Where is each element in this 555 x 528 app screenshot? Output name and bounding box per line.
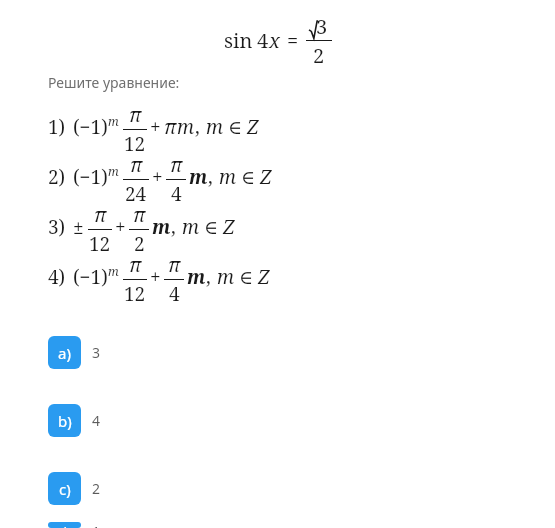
staticText: , (195, 114, 200, 140)
staticText: Z (247, 114, 259, 140)
staticText: + (150, 114, 161, 140)
staticText: , (171, 214, 176, 240)
staticText: 2 (92, 479, 101, 498)
staticText: b) (58, 411, 72, 431)
staticText: d) (58, 522, 72, 528)
staticText: π (168, 252, 181, 278)
staticText: 12 (124, 131, 146, 152)
staticText: , (208, 164, 213, 190)
staticText: 3 (316, 13, 328, 40)
staticText: Решите уравнение: (48, 73, 180, 92)
staticText: + (115, 214, 126, 240)
staticText: 1 (92, 522, 101, 528)
staticText: , (206, 264, 211, 290)
staticText: 3) (48, 214, 66, 240)
button[interactable]: Answer d: 1 (48, 522, 555, 528)
staticText: m (189, 164, 208, 190)
staticText: c) (59, 479, 71, 499)
staticText: m (219, 164, 237, 190)
staticText: m (108, 263, 119, 279)
staticText: ∈ (241, 166, 256, 188)
staticText: 4 (92, 411, 101, 430)
staticText: Z (258, 264, 270, 290)
staticText: π (129, 252, 142, 278)
staticText: 2) (48, 164, 66, 190)
staticText: 4 (257, 27, 269, 54)
staticText: x (269, 27, 280, 54)
staticText: a) (58, 343, 71, 363)
staticText: π (130, 152, 143, 178)
staticText: m (187, 264, 206, 290)
staticText: 12 (124, 281, 146, 302)
staticText: m (217, 264, 235, 290)
staticText: Z (223, 214, 235, 240)
staticText: (−1) (73, 114, 108, 140)
staticText: ∈ (239, 266, 254, 288)
staticText: ∈ (204, 216, 219, 238)
staticText: 4 (169, 281, 180, 302)
staticText: 4 (171, 181, 182, 202)
staticText: 2 (134, 231, 145, 252)
staticText: m (108, 163, 119, 179)
staticText: m (152, 214, 171, 240)
staticText: m (206, 114, 224, 140)
staticText: (−1) (73, 164, 108, 190)
button[interactable]: Answer a: 3 (48, 318, 555, 386)
staticText: + (152, 164, 163, 190)
staticText: π (94, 202, 107, 228)
staticText: 1) (48, 114, 66, 140)
staticText: Z (260, 164, 272, 190)
staticText: π (129, 102, 142, 128)
staticText: 4) (48, 264, 66, 290)
staticText: π (170, 152, 183, 178)
staticText: ± (73, 214, 84, 240)
staticText: 12 (89, 231, 111, 252)
staticText: 2 (313, 42, 325, 69)
staticText: m (177, 114, 195, 140)
staticText: (−1) (73, 264, 108, 290)
button[interactable]: Answer c: 2 (48, 454, 555, 522)
staticText: 3 (92, 343, 101, 362)
staticText: = (287, 27, 299, 54)
button[interactable]: Answer b: 4 (48, 386, 555, 454)
staticText: π (133, 202, 146, 228)
staticText: m (182, 214, 200, 240)
staticText: sin (224, 27, 253, 54)
staticText: 24 (125, 181, 147, 202)
staticText: m (108, 113, 119, 129)
staticText: + (150, 264, 161, 290)
staticText: π (164, 114, 177, 140)
staticText: ∈ (228, 116, 243, 138)
